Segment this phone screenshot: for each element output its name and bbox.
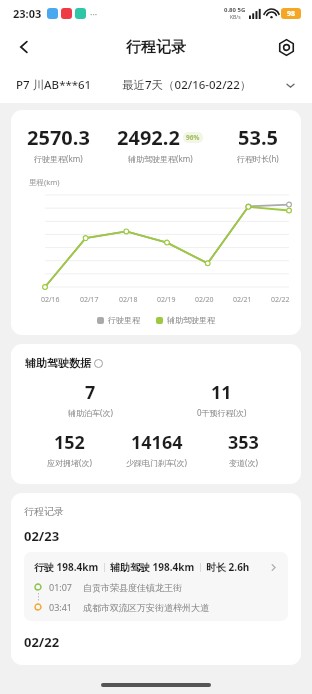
- staticText: P7 川AB***61: [16, 77, 92, 93]
- staticText: 53.5: [238, 124, 278, 151]
- staticText: 03:41: [49, 601, 73, 613]
- staticText: 02/21: [233, 295, 252, 305]
- staticText: 少踩电门刹车(次): [126, 457, 187, 468]
- button[interactable]: P7 川AB***61: [16, 77, 92, 93]
- staticText: 里程(km): [29, 177, 60, 187]
- staticText: 0.80 5G: [224, 6, 246, 14]
- staticText: 变道(次): [229, 457, 258, 468]
- staticText: 行驶里程: [108, 315, 140, 325]
- staticText: 2492.2: [117, 124, 180, 151]
- staticText: 02/18: [119, 295, 138, 305]
- staticText: 行驶里程(km): [34, 153, 83, 164]
- staticText: 152: [54, 430, 85, 455]
- staticText: 成都市双流区万安街道梓州大道: [83, 602, 209, 613]
- staticText: 02/22: [24, 633, 60, 651]
- staticText: 辅助驾驶 198.4km: [110, 560, 195, 574]
- staticText: 行程记录: [126, 38, 186, 57]
- staticText: 辅助泊车(次): [68, 407, 113, 418]
- button[interactable]: Back: [6, 29, 42, 65]
- staticText: 0干预行程(次): [197, 407, 247, 418]
- staticText: KB/s: [230, 14, 241, 21]
- staticText: 辅助驾驶里程(km): [128, 153, 193, 164]
- staticText: 行程时长(h): [237, 153, 279, 164]
- staticText: 353: [228, 430, 259, 455]
- staticText: 02/17: [80, 295, 99, 305]
- staticText: 98: [287, 9, 296, 19]
- button[interactable]: 辅助驾驶数据: [25, 356, 103, 370]
- button[interactable]: Settings: [268, 29, 304, 65]
- button[interactable]: 行驶 198.4km: [24, 552, 288, 621]
- staticText: 行程记录: [24, 505, 64, 518]
- staticText: 行驶 198.4km: [34, 560, 99, 574]
- staticText: 96%: [186, 133, 200, 142]
- staticText: 辅助驾驶数据: [25, 356, 91, 370]
- staticText: 自贡市荣县度佳镇龙王街: [83, 582, 182, 593]
- staticText: 02/23: [24, 527, 60, 545]
- staticText: 2570.3: [27, 124, 90, 151]
- staticText: 应对拥堵(次): [47, 457, 92, 468]
- staticText: 7: [85, 380, 96, 405]
- staticText: 02/22: [271, 295, 290, 305]
- staticText: 01:07: [49, 581, 73, 593]
- staticText: 02/20: [195, 295, 214, 305]
- staticText: 0: [38, 286, 43, 287]
- staticText: 02/19: [157, 295, 176, 305]
- staticText: 23:03: [13, 6, 42, 21]
- staticText: 时长 2.6h: [206, 560, 250, 574]
- staticText: 14164: [131, 430, 183, 455]
- staticText: 11: [211, 380, 232, 405]
- button[interactable]: 最近7天（02/16-02/22）: [122, 77, 296, 93]
- staticText: 02/16: [41, 295, 60, 305]
- staticText: 最近7天（02/16-02/22）: [122, 77, 252, 93]
- staticText: ···: [90, 8, 98, 20]
- staticText: 辅助驾驶里程: [167, 315, 215, 325]
